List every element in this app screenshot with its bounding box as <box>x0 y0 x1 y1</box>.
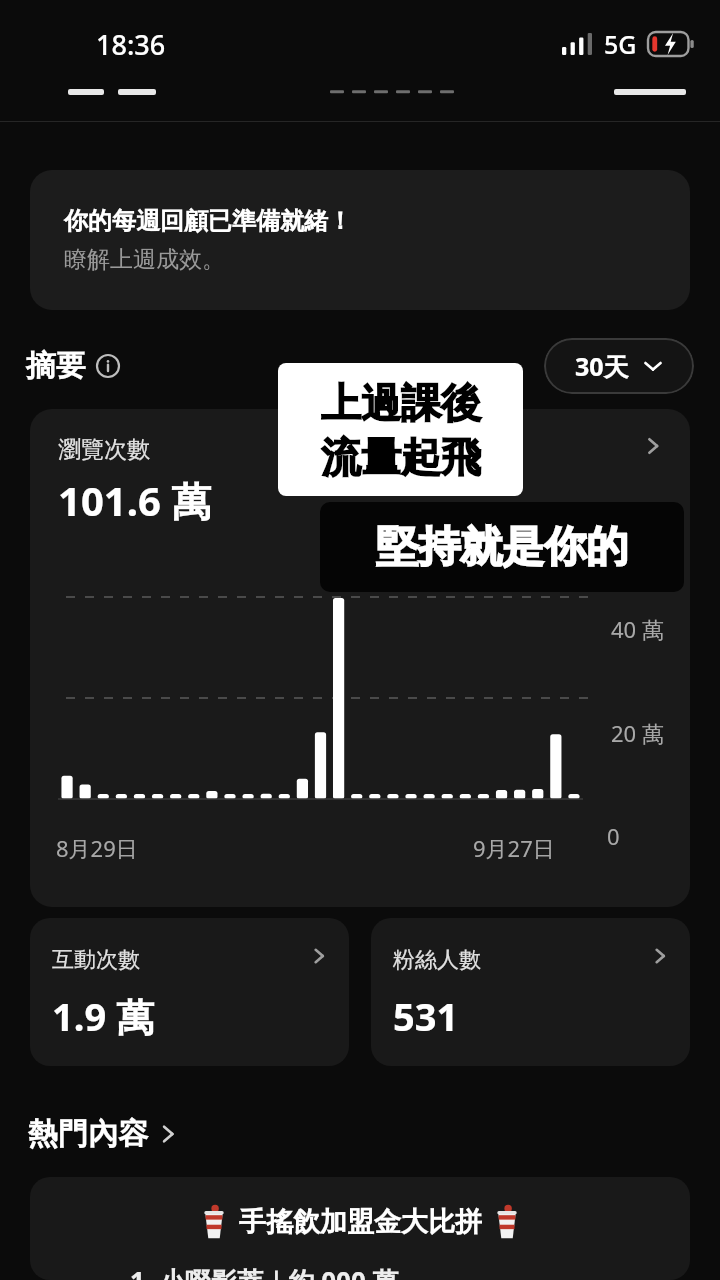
staticText: 熱門內容 <box>28 1115 148 1153</box>
staticText: 上過課後 <box>321 378 481 428</box>
staticText: 9月27日 <box>473 833 555 863</box>
staticText: 30天 <box>575 349 629 383</box>
staticText: 101.6 萬 <box>58 473 212 528</box>
button[interactable]: 粉絲人數 <box>371 918 690 1066</box>
staticText: 瀏覽次數 <box>58 435 150 464</box>
staticText: 531 <box>393 990 459 1042</box>
button[interactable]: 熱門內容 <box>28 1112 182 1156</box>
staticText: 18:36 <box>96 26 166 63</box>
staticText: 堅持就是你的 <box>376 521 628 574</box>
staticText: 手搖飲加盟金大比拼 <box>239 1205 482 1239</box>
staticText: 40 萬 <box>611 614 664 644</box>
staticText: 你的每週回顧已準備就緒！ <box>64 206 352 236</box>
button[interactable]: 手搖飲加盟金大比拼 <box>30 1177 690 1280</box>
button[interactable]: 互動次數 <box>30 918 349 1066</box>
button[interactable]: 瀏覽次數 <box>30 409 690 907</box>
staticText: 摘要 <box>26 347 86 385</box>
button[interactable]: 30天 <box>544 338 694 394</box>
staticText: 5G <box>604 27 637 61</box>
staticText: 互動次數 <box>52 946 140 974</box>
staticText: 20 萬 <box>611 718 664 748</box>
staticText: 粉絲人數 <box>393 946 481 974</box>
button[interactable]: 你的每週回顧已準備就緒！ <box>30 170 690 310</box>
button[interactable]: Info about summary <box>96 354 120 378</box>
staticText: 0 <box>607 821 620 851</box>
staticText: 1.9 萬 <box>52 990 155 1042</box>
staticText: 8月29日 <box>56 833 138 863</box>
other: View details <box>640 433 666 459</box>
staticText: 流量起飛 <box>321 432 481 482</box>
staticText: 瞭解上週成效。 <box>64 245 225 274</box>
staticText: 1. 小啜影萃｜約 000 萬 <box>130 1263 399 1280</box>
